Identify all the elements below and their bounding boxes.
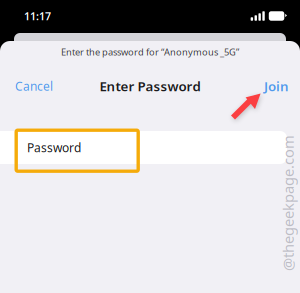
staticText: 11:17 xyxy=(24,9,51,23)
staticText: Join xyxy=(264,77,289,95)
staticText: Enter Password xyxy=(99,77,200,95)
staticText: Password xyxy=(27,139,81,155)
staticText: Enter the password for “Anonymous _5G” xyxy=(61,46,239,58)
button[interactable]: Cancel xyxy=(15,72,53,100)
staticText: @thegeekpage.com xyxy=(220,193,300,213)
staticText: Cancel xyxy=(15,78,53,94)
button[interactable]: Join xyxy=(264,72,289,100)
button[interactable]: Password xyxy=(0,131,287,164)
